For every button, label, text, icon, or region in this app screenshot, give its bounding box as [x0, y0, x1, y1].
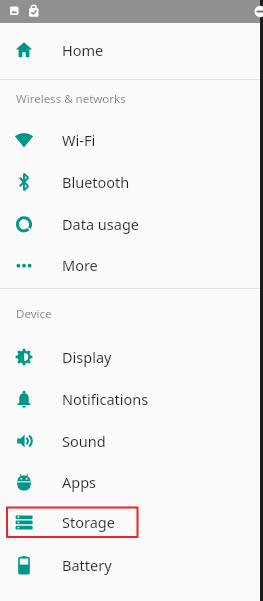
button[interactable]: Notifications	[0, 378, 260, 420]
button[interactable]: Sound	[0, 420, 260, 462]
staticText: Wireless & networks	[16, 91, 126, 107]
staticText: Notifications	[62, 389, 149, 409]
button[interactable]: Home	[0, 29, 260, 71]
staticText: Bluetooth	[62, 172, 130, 192]
button[interactable]: Bluetooth	[0, 161, 260, 203]
staticText: Home	[62, 40, 104, 60]
staticText: Battery	[62, 555, 112, 575]
staticText: Storage	[62, 512, 115, 532]
button[interactable]: Battery	[0, 544, 260, 586]
staticText: Display	[62, 347, 112, 367]
button[interactable]: Display	[0, 336, 260, 378]
staticText: Wi-Fi	[62, 130, 96, 150]
staticText: Apps	[62, 472, 97, 492]
button[interactable]: Data usage	[0, 203, 260, 245]
staticText: Sound	[62, 431, 106, 451]
staticText: Device	[16, 306, 52, 322]
staticText: More	[62, 255, 98, 275]
button[interactable]: Apps	[0, 461, 260, 503]
button[interactable]: Wi-Fi	[0, 119, 260, 161]
staticText: Data usage	[62, 214, 139, 234]
button[interactable]: More	[0, 244, 260, 286]
button[interactable]: Storage	[0, 501, 260, 543]
